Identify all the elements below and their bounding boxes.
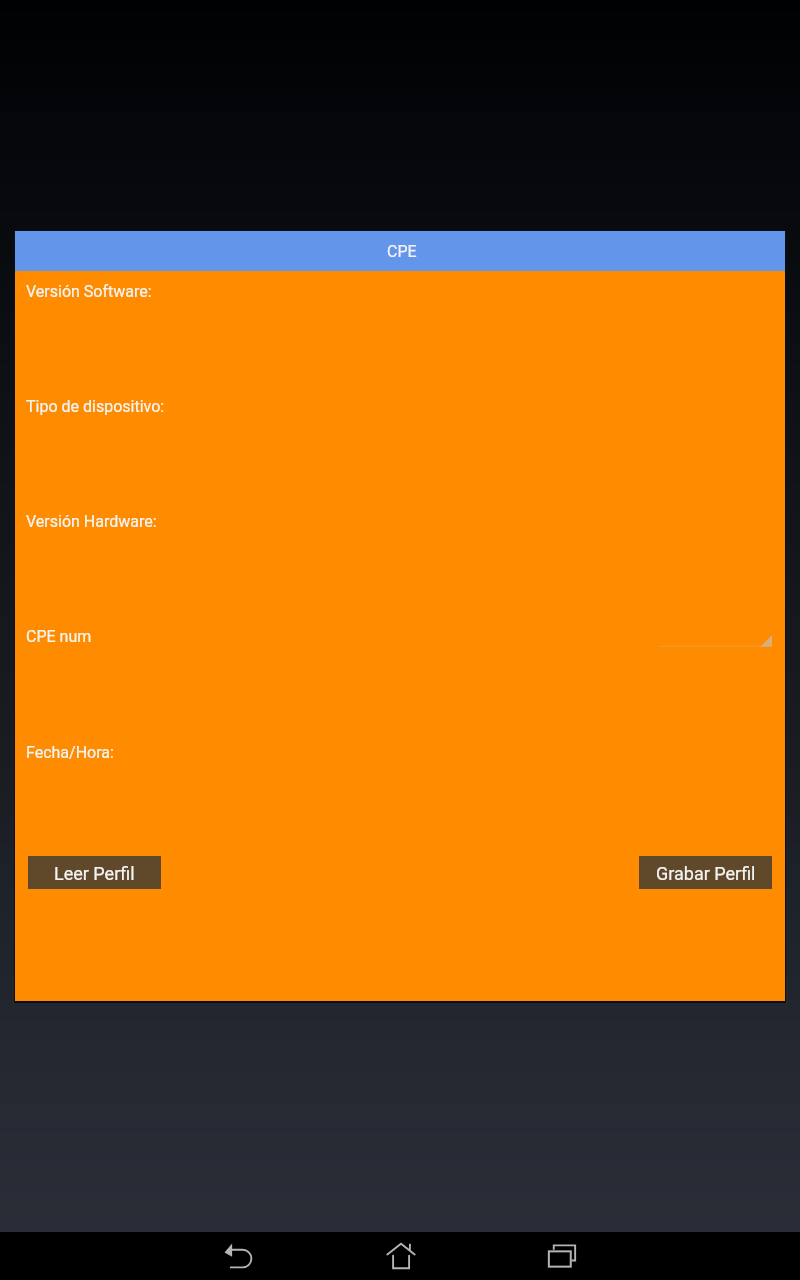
button[interactable]: CPE num input field bbox=[659, 622, 772, 647]
staticText: Versión Hardware: bbox=[26, 512, 157, 531]
staticText: Versión Software: bbox=[26, 282, 152, 301]
staticText: Fecha/Hora: bbox=[26, 743, 114, 762]
staticText: Tipo de dispositivo: bbox=[26, 397, 165, 416]
staticText: CPE bbox=[387, 242, 417, 261]
staticText: CPE num bbox=[26, 627, 92, 646]
button[interactable]: Grabar Perfil bbox=[639, 856, 772, 889]
button[interactable]: Recent apps bbox=[535, 1232, 589, 1280]
button[interactable]: Leer Perfil bbox=[28, 856, 161, 889]
staticText: Leer Perfil bbox=[54, 863, 135, 884]
staticText: Grabar Perfil bbox=[656, 863, 756, 884]
button[interactable]: Home bbox=[374, 1232, 428, 1280]
button[interactable]: Back bbox=[211, 1232, 265, 1280]
